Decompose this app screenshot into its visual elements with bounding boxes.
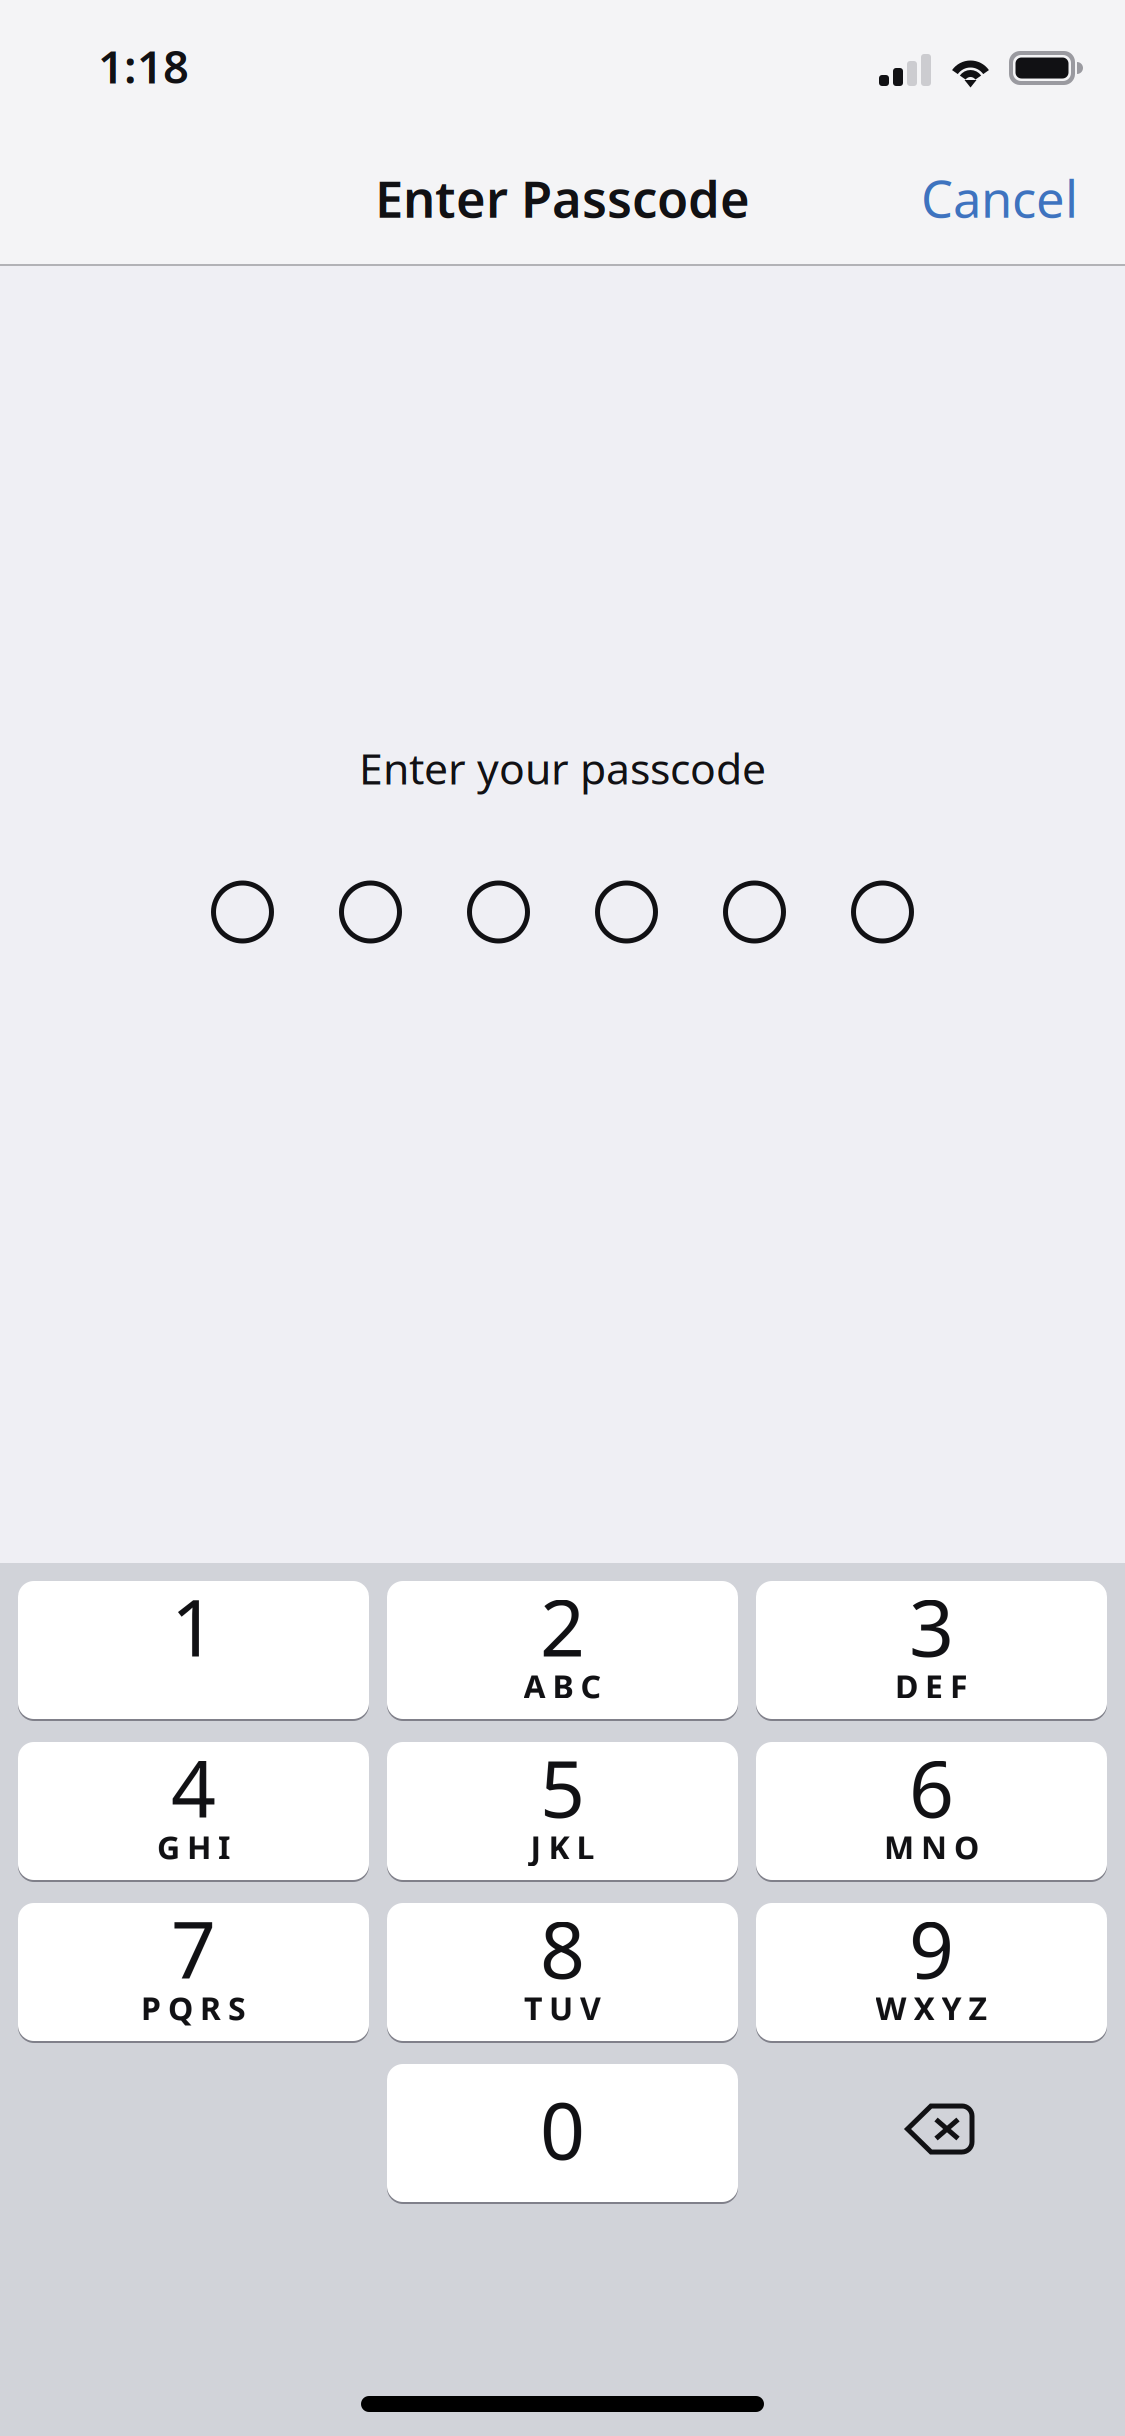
staticText: H	[187, 1826, 211, 1868]
staticText: L	[576, 1826, 594, 1868]
staticText: E	[925, 1665, 943, 1707]
button[interactable]: Delete	[756, 2064, 1107, 2202]
button[interactable]: 2	[387, 1581, 738, 1719]
staticText: Q	[168, 1987, 193, 2029]
staticText: W	[875, 1987, 906, 2029]
staticText: Enter Passcode	[375, 164, 750, 232]
staticText: I	[218, 1826, 230, 1868]
staticText: O	[954, 1826, 979, 1868]
staticText: 8	[540, 1896, 585, 2000]
staticText: 2	[540, 1574, 585, 1678]
staticText: J	[530, 1826, 541, 1868]
staticText: U	[549, 1987, 573, 2029]
button[interactable]: 9	[756, 1903, 1107, 2041]
button[interactable]: 3	[756, 1581, 1107, 1719]
staticText: A	[523, 1665, 545, 1707]
button[interactable]: 7	[18, 1903, 369, 2041]
button[interactable]: 5	[387, 1742, 738, 1880]
staticText: C	[580, 1665, 601, 1707]
staticText: 4	[171, 1735, 216, 1839]
button[interactable]: 4	[18, 1742, 369, 1880]
staticText: 1:18	[98, 36, 189, 96]
staticText: Enter your passcode	[359, 740, 766, 796]
staticText: V	[580, 1987, 601, 2029]
staticText: M	[884, 1826, 914, 1868]
staticText: 0	[540, 2077, 585, 2181]
staticText: K	[548, 1826, 569, 1868]
button[interactable]: Cancel	[911, 150, 1088, 246]
staticText: F	[950, 1665, 968, 1707]
staticText: 1	[171, 1574, 216, 1678]
staticText: R	[200, 1987, 221, 2029]
staticText: 6	[909, 1735, 954, 1839]
staticText: D	[895, 1665, 918, 1707]
staticText: Cancel	[921, 164, 1078, 232]
staticText: B	[552, 1665, 573, 1707]
button[interactable]: 0	[387, 2064, 738, 2202]
staticText: 3	[909, 1574, 954, 1678]
staticText: P	[141, 1987, 161, 2029]
button[interactable]: 6	[756, 1742, 1107, 1880]
staticText: 9	[909, 1896, 954, 2000]
staticText: X	[913, 1987, 934, 2029]
staticText: T	[524, 1987, 542, 2029]
button[interactable]: 1	[18, 1581, 369, 1719]
staticText: N	[921, 1826, 947, 1868]
staticText: G	[157, 1826, 180, 1868]
staticText: Y	[941, 1987, 961, 2029]
staticText: Z	[968, 1987, 987, 2029]
staticText: 7	[171, 1896, 216, 2000]
button[interactable]: 8	[387, 1903, 738, 2041]
staticText: 5	[540, 1735, 585, 1839]
staticText: S	[228, 1987, 246, 2029]
